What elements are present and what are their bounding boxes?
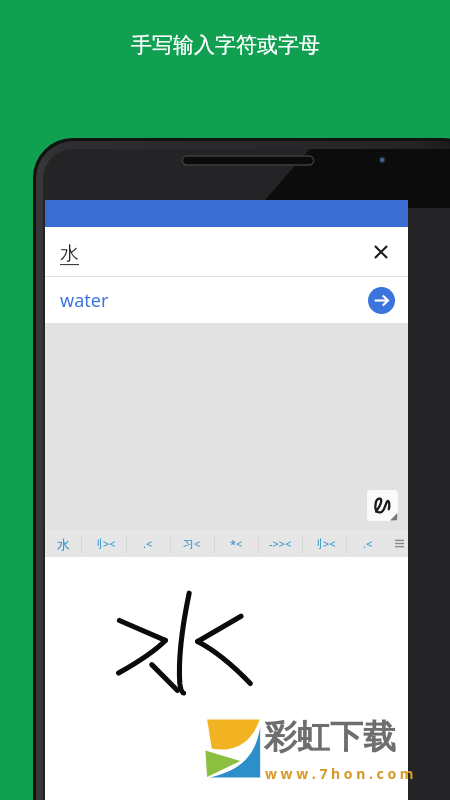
button[interactable]: .< [346,530,390,557]
button[interactable]: water [45,277,408,323]
staticText: .< [143,536,153,551]
button[interactable]: *< [214,530,258,557]
staticText: 彩虹下载 [264,716,396,758]
staticText: 手写输入字符或字母 [131,32,320,58]
staticText: 刂>< [92,536,116,551]
button[interactable]: Handwriting input [367,490,398,521]
staticText: 水 [60,242,79,266]
staticText: ->>< [269,536,292,551]
staticText: 水 [57,536,70,552]
staticText: 习< [183,536,201,551]
staticText: water [60,288,109,313]
button[interactable]: Go [364,283,398,317]
button[interactable]: ->>< [258,530,302,557]
button[interactable] [45,557,408,800]
button[interactable]: .< [126,530,170,557]
staticText: .< [363,536,373,551]
button[interactable]: 刂>< [81,530,126,557]
button[interactable]: 习< [170,530,214,557]
button[interactable]: 水 [45,530,81,557]
staticText: *< [230,536,243,551]
button[interactable]: 刂>< [302,530,346,557]
button[interactable]: More candidates [390,530,408,557]
staticText: w w w . 7 h o n . c o m [265,764,414,783]
staticText: 刂>< [312,536,336,551]
button[interactable]: Clear [364,235,398,269]
